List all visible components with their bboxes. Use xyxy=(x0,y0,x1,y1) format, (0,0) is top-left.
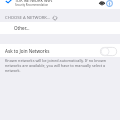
staticText: TDK NETWORK WIFI xyxy=(15,0,53,3)
button[interactable]: TDK NETWORK WIFI xyxy=(0,0,120,9)
staticText: CHOOSE A NETWORK... xyxy=(5,15,51,21)
staticText: Known networks will be joined automatica… xyxy=(5,58,112,73)
button[interactable]: More Info xyxy=(106,0,113,7)
staticText: Other... xyxy=(14,25,30,31)
button[interactable]: Other... xyxy=(0,22,120,34)
button[interactable]: Ask to Join Networks toggle xyxy=(100,47,117,56)
staticText: Security Recommendation xyxy=(15,3,49,7)
other: Wi-Fi signal xyxy=(99,0,105,5)
staticText: Ask to Join Networks xyxy=(5,48,50,54)
button[interactable]: Ask to Join Networks xyxy=(0,44,120,57)
